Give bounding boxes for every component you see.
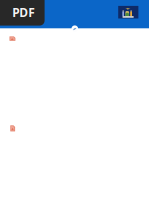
button[interactable]: PDF bbox=[0, 0, 45, 26]
button[interactable]: Site logo bbox=[71, 25, 78, 32]
staticText: PDF bbox=[12, 4, 35, 20]
button[interactable]: New York State bbox=[118, 6, 138, 18]
